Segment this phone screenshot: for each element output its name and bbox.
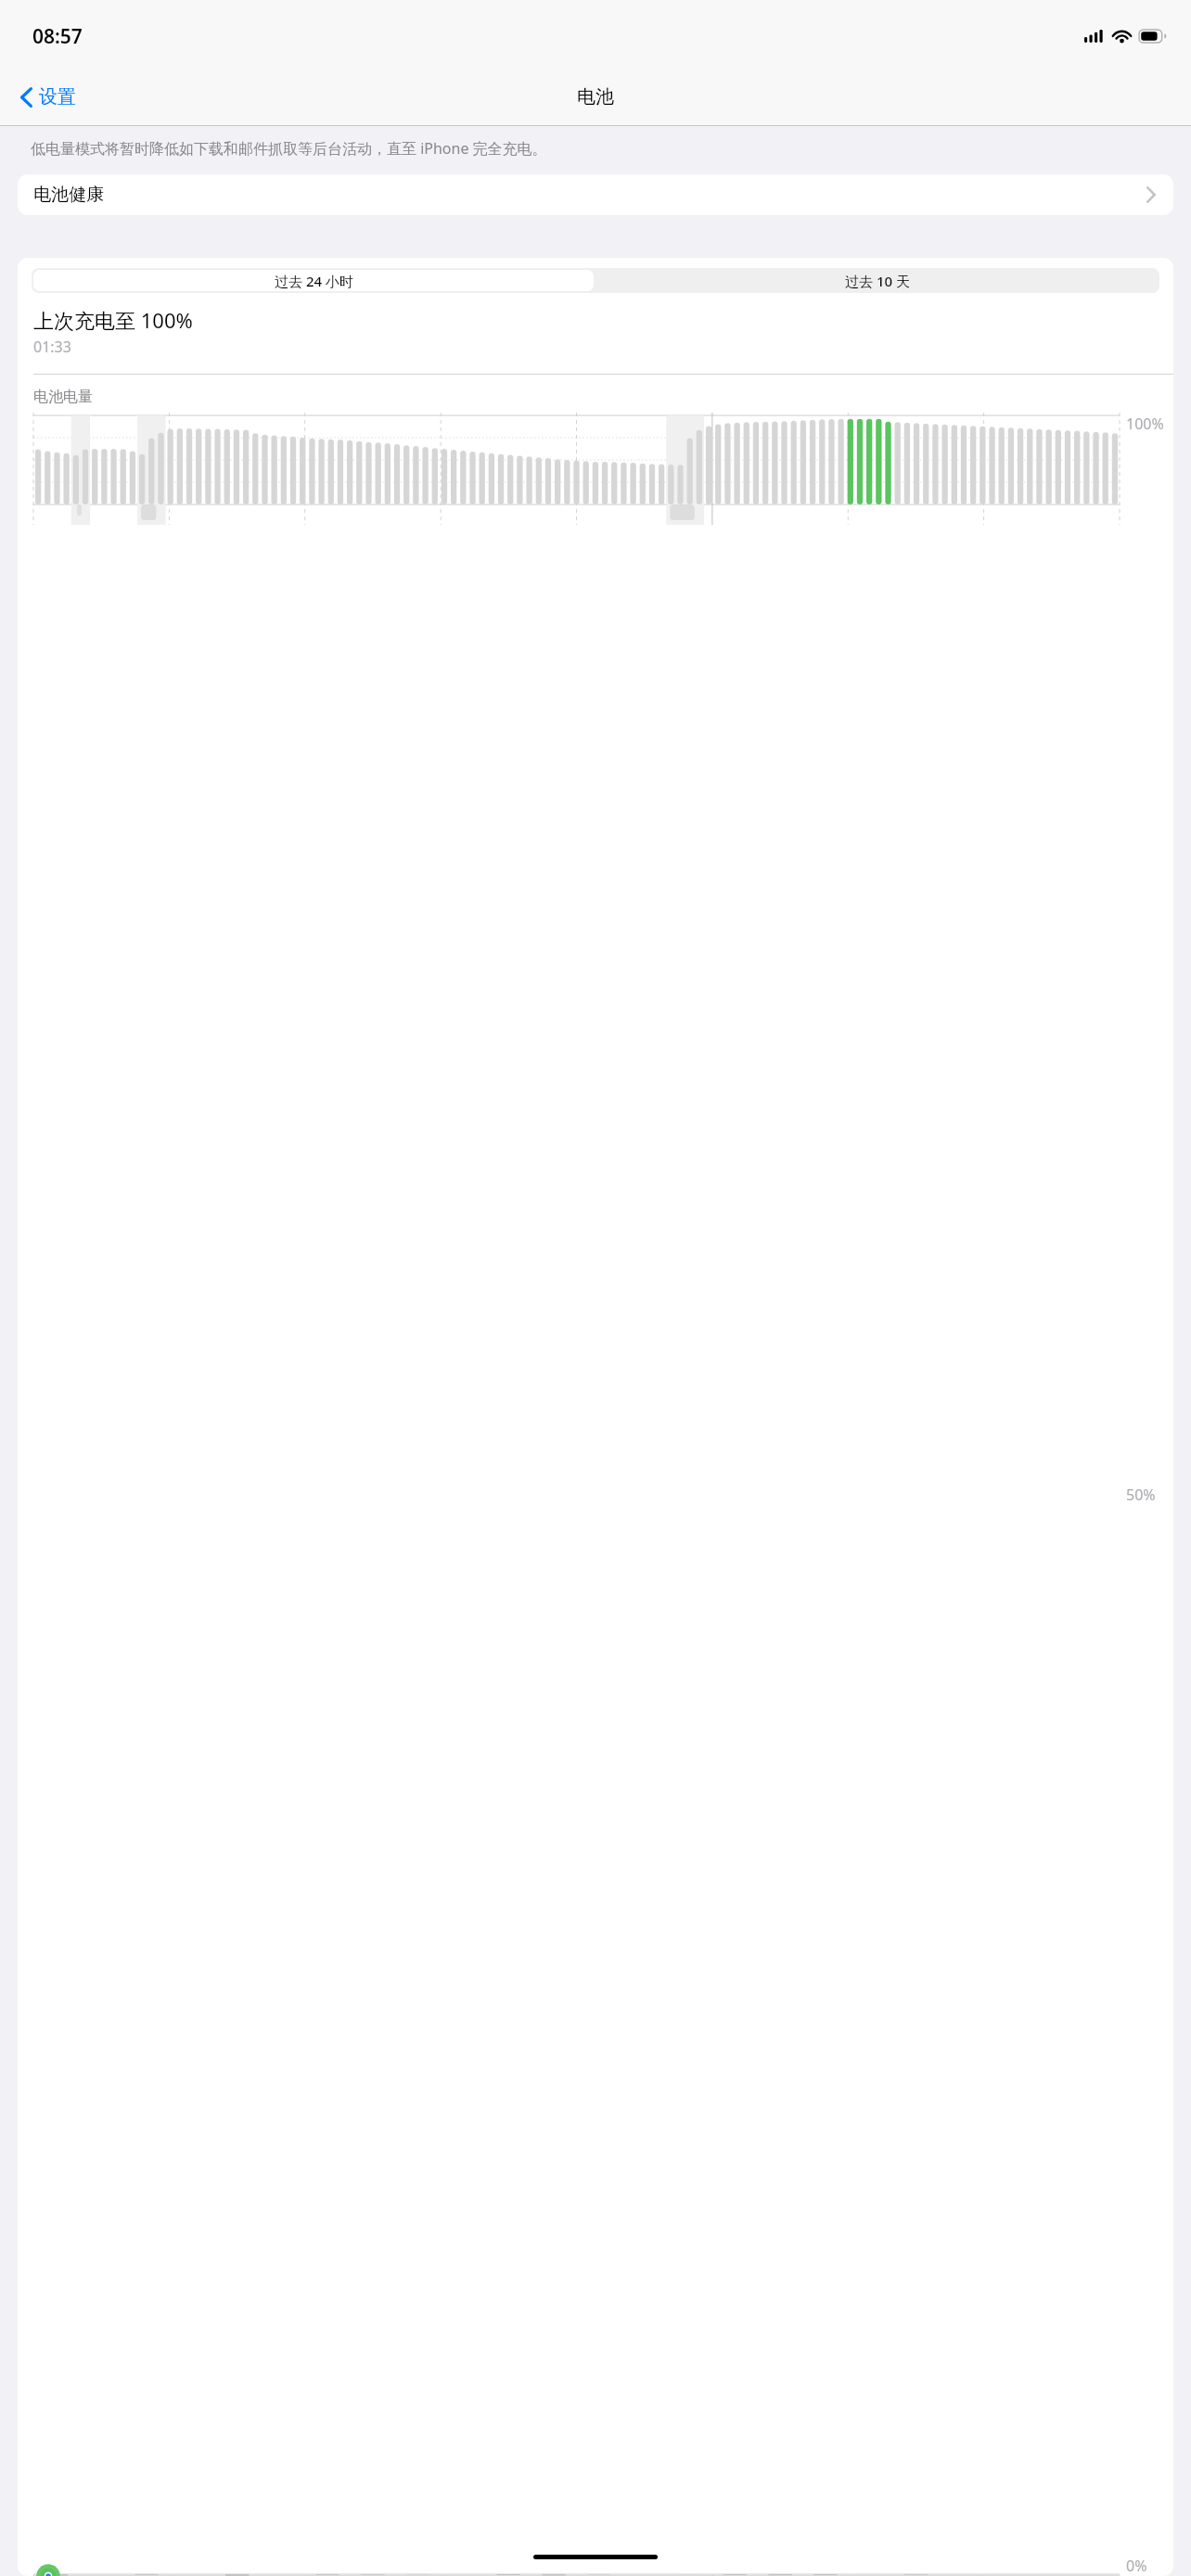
button[interactable]: 设置 bbox=[13, 80, 83, 114]
staticText: 过去 24 小时 bbox=[275, 272, 353, 290]
staticText: 过去 10 天 bbox=[845, 272, 910, 290]
staticText: 0% bbox=[1126, 2556, 1147, 2576]
staticText: 50% bbox=[1126, 1485, 1156, 1505]
button[interactable]: 电池健康 bbox=[18, 174, 1173, 215]
button[interactable]: 过去 10 天 bbox=[595, 268, 1159, 293]
staticText: 低电量模式将暂时降低如下载和邮件抓取等后台活动，直至 iPhone 完全充电。 bbox=[31, 138, 547, 159]
button[interactable]: 过去 24 小时 bbox=[33, 270, 594, 291]
staticText: 01:33 bbox=[33, 337, 71, 357]
staticText: 08:57 bbox=[32, 23, 83, 50]
staticText: 电池健康 bbox=[33, 184, 104, 206]
staticText: 100% bbox=[1126, 414, 1164, 434]
staticText: 设置 bbox=[39, 85, 76, 108]
staticText: 电池 bbox=[577, 85, 614, 108]
staticText: 电池电量 bbox=[33, 388, 93, 406]
staticText: 上次充电至 100% bbox=[33, 306, 193, 334]
